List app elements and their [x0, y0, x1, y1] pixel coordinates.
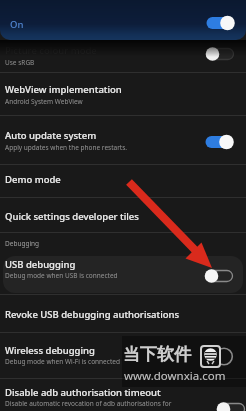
- button[interactable]: WebView implementation: [0, 73, 246, 115]
- button[interactable]: On: [0, 0, 246, 40]
- staticText: Quick settings developer tiles: [5, 210, 139, 223]
- staticText: USB debugging: [5, 258, 76, 271]
- staticText: Demo mode: [5, 173, 61, 186]
- staticText: Debugging: [5, 239, 40, 248]
- button[interactable]: USB debugging: [3, 256, 243, 293]
- button[interactable]: Demo mode: [0, 165, 246, 197]
- staticText: Use sRGB: [5, 58, 35, 67]
- staticText: Disable adb authorisation timeout: [5, 386, 161, 399]
- staticText: Debug mode when Wi-Fi is connected: [5, 357, 120, 366]
- staticText: Android System WebView: [5, 97, 83, 106]
- staticText: Apply updates when the phone restarts.: [5, 143, 128, 152]
- staticText: On: [10, 18, 24, 31]
- staticText: 当下软件: [123, 344, 191, 365]
- button[interactable]: Auto update system: [0, 116, 246, 164]
- staticText: Disable automatic revocation of adb auth…: [5, 399, 172, 408]
- button[interactable]: Disable adb authorisation timeout: [0, 379, 246, 411]
- staticText: Auto update system: [5, 129, 97, 142]
- button[interactable]: Picture colour mode: [0, 41, 246, 72]
- staticText: Debug mode when USB is connected: [5, 271, 118, 280]
- staticText: Picture colour mode: [5, 44, 97, 57]
- button[interactable]: Quick settings developer tiles: [0, 198, 246, 232]
- button[interactable]: Revoke USB debugging authorisations: [0, 295, 246, 332]
- staticText: WebView implementation: [5, 83, 122, 96]
- button[interactable]: Wireless debugging: [0, 333, 246, 378]
- staticText: www.downxia.com: [124, 368, 226, 384]
- staticText: Wireless debugging: [5, 344, 95, 357]
- staticText: Revoke USB debugging authorisations: [5, 308, 180, 321]
